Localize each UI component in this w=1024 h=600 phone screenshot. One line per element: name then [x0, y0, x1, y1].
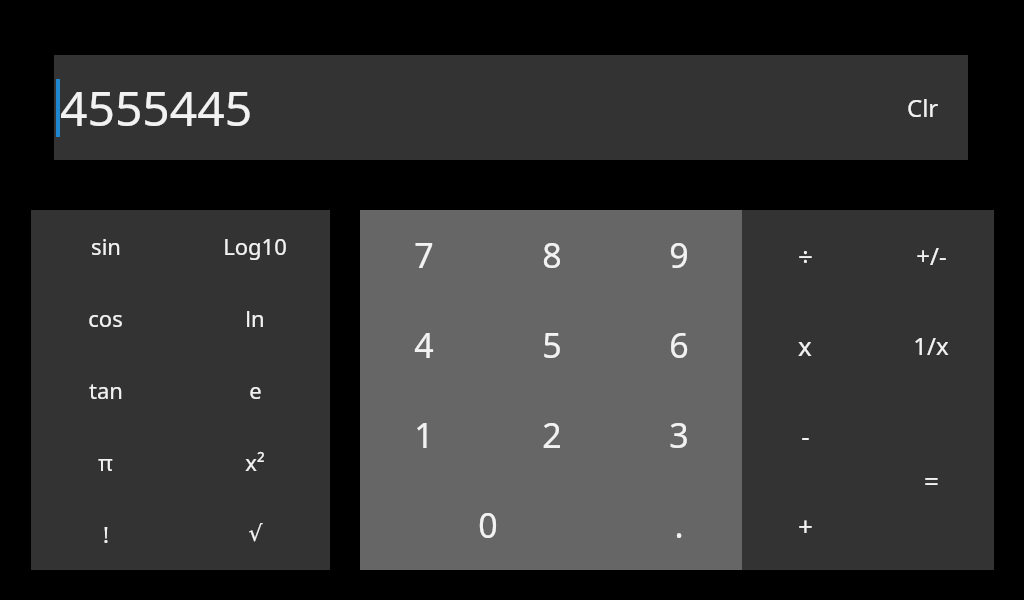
button[interactable]: 5: [488, 300, 615, 390]
button[interactable]: 2: [488, 390, 615, 480]
staticText: 4555445: [60, 75, 253, 140]
button[interactable]: 7: [360, 210, 488, 300]
staticText: .: [674, 502, 684, 548]
staticText: 0: [478, 502, 498, 548]
button[interactable]: 1/x: [868, 300, 994, 390]
button[interactable]: !: [31, 498, 180, 570]
staticText: 7: [414, 232, 434, 278]
button[interactable]: e: [180, 354, 330, 426]
staticText: Clr: [907, 91, 939, 124]
button[interactable]: Log10: [180, 210, 330, 282]
button[interactable]: 9: [615, 210, 742, 300]
button[interactable]: √: [180, 498, 330, 570]
button[interactable]: +: [742, 480, 868, 570]
staticText: 4: [414, 322, 434, 368]
staticText: π: [98, 447, 113, 477]
staticText: =: [924, 463, 939, 498]
button[interactable]: .: [615, 480, 742, 570]
button[interactable]: 0: [360, 480, 615, 570]
staticText: +/-: [916, 239, 947, 272]
staticText: cos: [88, 303, 123, 333]
button[interactable]: -: [742, 390, 868, 480]
staticText: Log10: [223, 231, 287, 261]
button[interactable]: x²: [180, 426, 330, 498]
staticText: tan: [89, 375, 123, 405]
staticText: ÷: [798, 238, 813, 273]
staticText: sin: [91, 231, 121, 261]
staticText: 3: [669, 412, 689, 458]
button[interactable]: Clr: [878, 55, 968, 160]
staticText: 8: [542, 232, 562, 278]
button[interactable]: cos: [31, 282, 180, 354]
staticText: -: [801, 418, 810, 453]
staticText: 9: [669, 232, 689, 278]
staticText: !: [103, 519, 109, 549]
button[interactable]: tan: [31, 354, 180, 426]
button[interactable]: 1: [360, 390, 488, 480]
staticText: +: [798, 508, 813, 543]
button[interactable]: 4: [360, 300, 488, 390]
staticText: 1/x: [913, 329, 949, 362]
staticText: 6: [669, 322, 689, 368]
button[interactable]: +/-: [868, 210, 994, 300]
button[interactable]: 3: [615, 390, 742, 480]
staticText: x: [798, 328, 812, 363]
button[interactable]: sin: [31, 210, 180, 282]
button[interactable]: 8: [488, 210, 615, 300]
staticText: ln: [245, 303, 265, 333]
staticText: x²: [245, 447, 265, 477]
staticText: √: [248, 521, 263, 547]
staticText: 1: [414, 412, 434, 458]
button[interactable]: ln: [180, 282, 330, 354]
button[interactable]: π: [31, 426, 180, 498]
button[interactable]: 6: [615, 300, 742, 390]
button[interactable]: =: [868, 390, 994, 570]
button[interactable]: x: [742, 300, 868, 390]
staticText: e: [249, 375, 262, 405]
button[interactable]: ÷: [742, 210, 868, 300]
staticText: 5: [542, 322, 562, 368]
staticText: 2: [542, 412, 562, 458]
button[interactable]: 4555445: [54, 55, 968, 160]
